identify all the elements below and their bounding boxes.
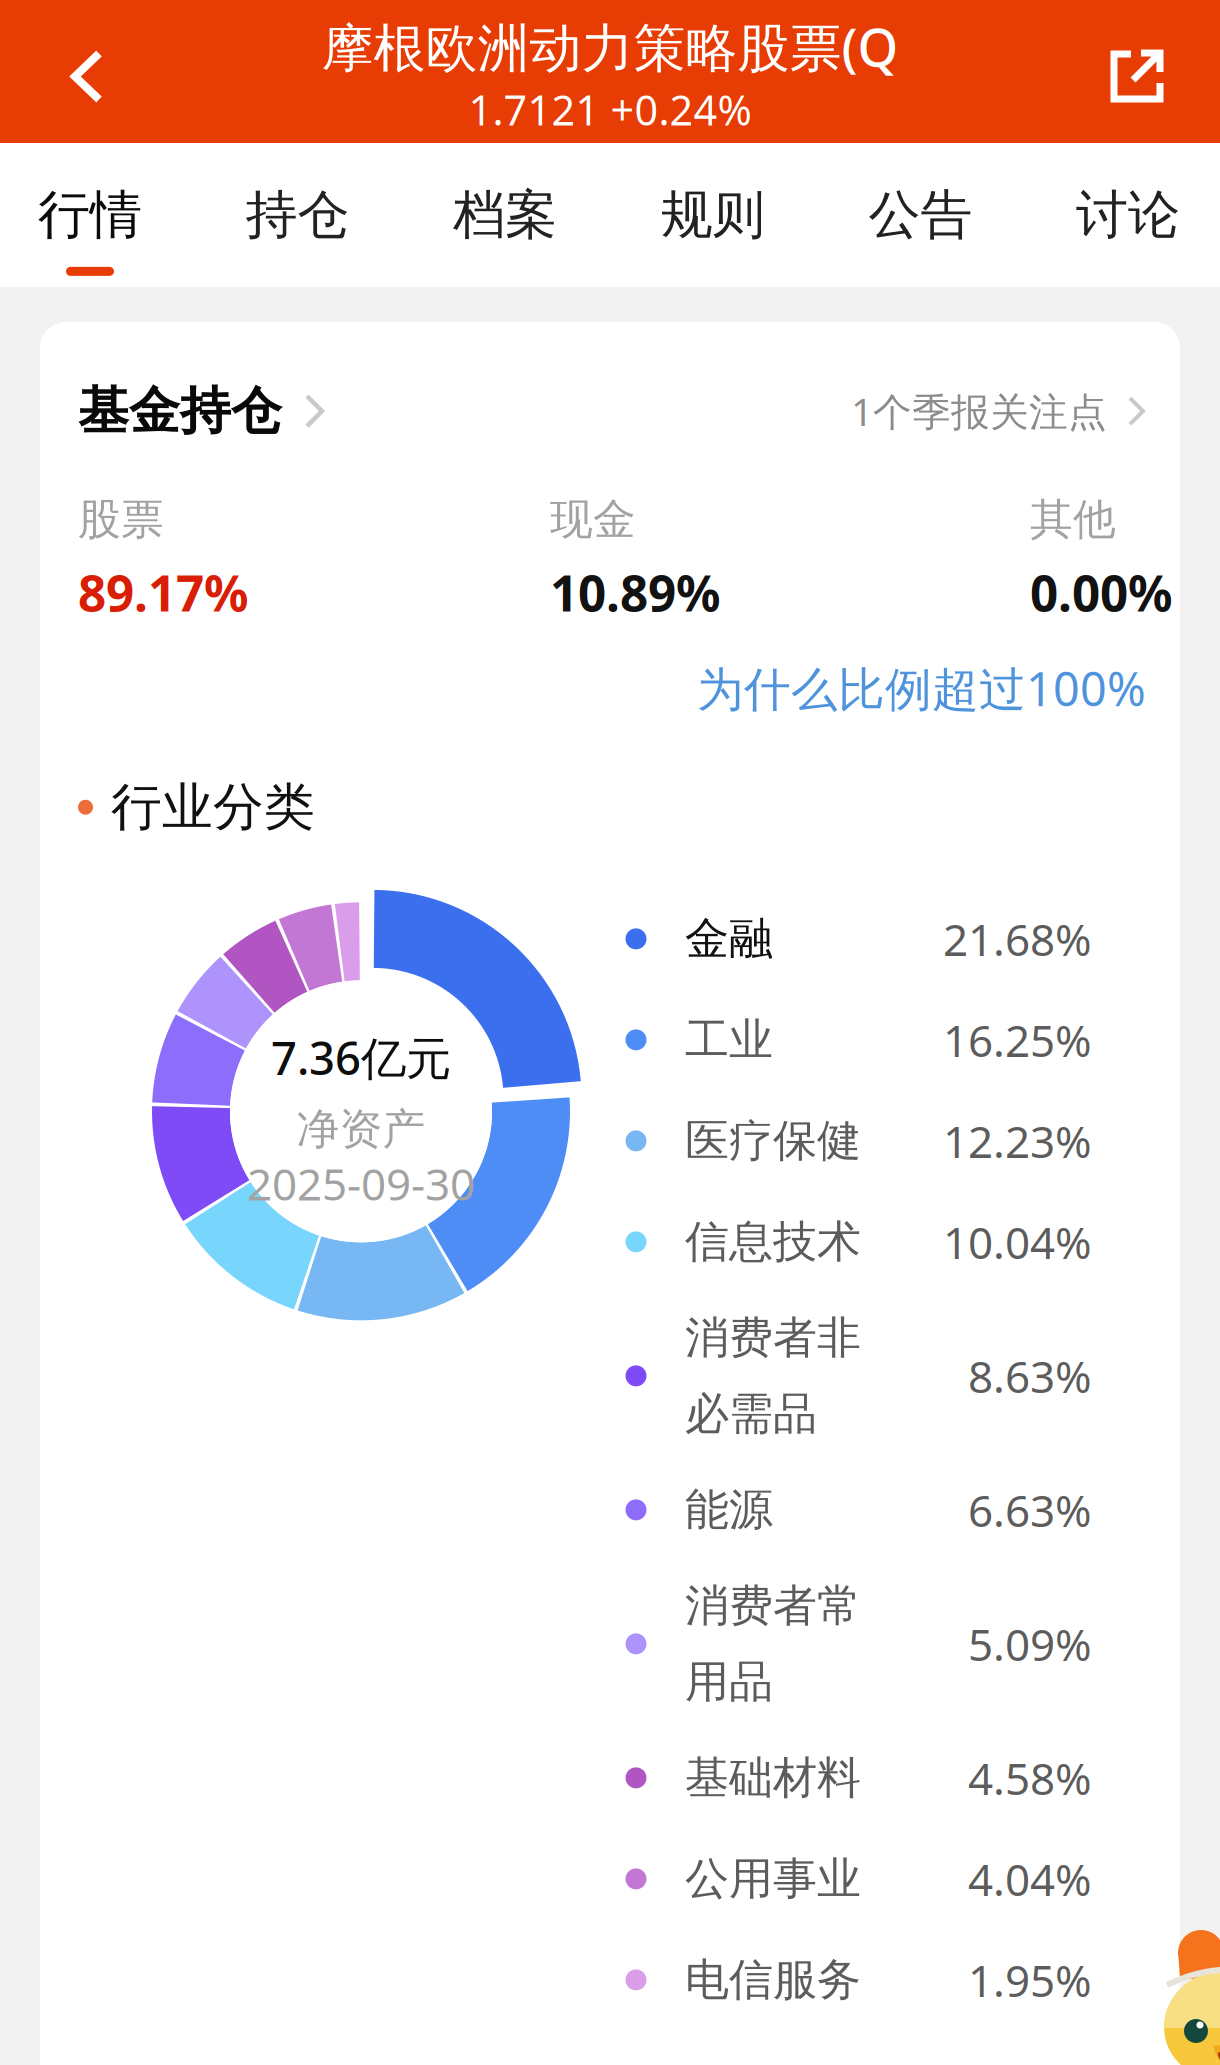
staticText: 1.7121 +0.24% — [468, 82, 751, 137]
staticText: 消费者非 必需品 — [685, 1311, 861, 1441]
staticText: 1.95% — [968, 1951, 1092, 2009]
button[interactable]: 工业 — [587, 989, 1092, 1090]
staticText: 89.17% — [78, 560, 248, 625]
button[interactable]: 为什么比例超过100% — [697, 657, 1146, 719]
button[interactable]: 消费者常 用品 — [587, 1560, 1092, 1727]
staticText: 2025-09-30 — [247, 1154, 475, 1212]
staticText: 16.25% — [943, 1011, 1092, 1069]
staticText: 10.89% — [550, 560, 720, 625]
button[interactable]: 1个季报关注点 — [851, 385, 1146, 437]
button[interactable]: Back — [0, 0, 174, 143]
staticText: 现金 — [550, 493, 636, 546]
staticText: 医疗保健 — [685, 1114, 861, 1168]
staticText: 其他 — [1030, 493, 1116, 546]
staticText: 6.63% — [968, 1481, 1092, 1539]
staticText: 基础材料 — [685, 1751, 861, 1805]
staticText: 公告 — [868, 183, 972, 247]
staticText: 4.58% — [968, 1749, 1092, 1807]
staticText: 持仓 — [246, 183, 350, 247]
staticText: 1个季报关注点 — [851, 385, 1107, 437]
button[interactable]: 医疗保健 — [587, 1090, 1092, 1191]
button[interactable]: 电信服务 — [587, 1929, 1092, 2030]
staticText: 行情 — [38, 183, 142, 247]
button[interactable]: 能源 — [587, 1459, 1092, 1560]
staticText: 4.04% — [968, 1850, 1092, 1908]
button[interactable]: 消费者非 必需品 — [587, 1292, 1092, 1459]
staticText: 8.63% — [968, 1347, 1092, 1405]
staticText: 档案 — [453, 183, 557, 247]
staticText: 工业 — [685, 1013, 773, 1067]
staticText: 为什么比例超过100% — [697, 657, 1146, 719]
button[interactable]: 持仓 — [194, 143, 401, 287]
staticText: 7.36亿元 — [271, 1027, 451, 1087]
staticText: 金融 — [685, 912, 773, 966]
button[interactable]: 金融 — [587, 888, 1092, 989]
staticText: 公用事业 — [685, 1852, 861, 1906]
staticText: 净资产 — [296, 1103, 425, 1156]
button[interactable]: Share — [1054, 0, 1220, 143]
button[interactable]: 公用事业 — [587, 1828, 1092, 1929]
staticText: 5.09% — [968, 1615, 1092, 1673]
button[interactable]: 规则 — [609, 143, 817, 287]
staticText: 消费者常 用品 — [685, 1579, 861, 1709]
staticText: 摩根欧洲动力策略股票(Q — [321, 12, 898, 81]
button[interactable]: 讨论 — [1024, 143, 1220, 287]
staticText: 能源 — [685, 1483, 773, 1537]
staticText: 信息技术 — [685, 1215, 861, 1269]
staticText: 行业分类 — [111, 776, 315, 838]
staticText: 股票 — [78, 493, 164, 546]
staticText: 21.68% — [943, 910, 1092, 968]
staticText: 10.04% — [943, 1213, 1092, 1271]
staticText: 12.23% — [943, 1112, 1092, 1170]
button[interactable]: 行情 — [0, 143, 194, 287]
staticText: 讨论 — [1076, 183, 1180, 247]
button[interactable]: 基金持仓 — [78, 380, 325, 442]
button[interactable]: 基础材料 — [587, 1727, 1092, 1828]
button[interactable]: 公告 — [817, 143, 1024, 287]
button[interactable]: Assistant — [1108, 1953, 1220, 2065]
button[interactable]: 信息技术 — [587, 1191, 1092, 1292]
staticText: 电信服务 — [685, 1953, 861, 2007]
staticText: 规则 — [661, 183, 765, 247]
staticText: 0.00% — [1030, 560, 1172, 625]
staticText: 基金持仓 — [78, 380, 282, 442]
button[interactable]: 档案 — [401, 143, 609, 287]
